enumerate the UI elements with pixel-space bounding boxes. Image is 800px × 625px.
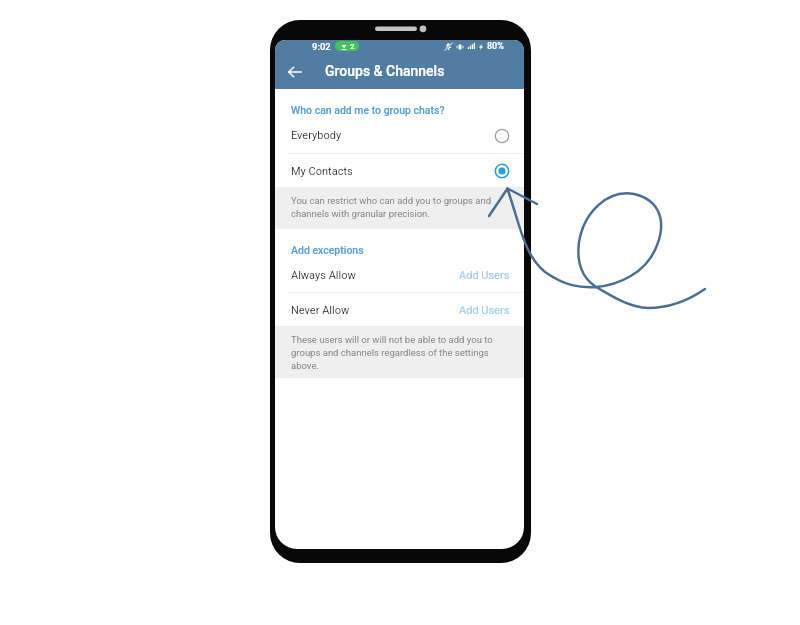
- staticText: Add Users: [459, 304, 510, 317]
- button[interactable]: Always Allow: [275, 258, 524, 292]
- staticText: My Contacts: [291, 165, 353, 178]
- staticText: Add exceptions: [291, 244, 364, 256]
- staticText: You can restrict who can add you to grou…: [291, 195, 504, 220]
- button[interactable]: Everybody: [275, 119, 524, 152]
- staticText: Always Allow: [291, 269, 356, 282]
- staticText: Add Users: [459, 269, 510, 282]
- button[interactable]: Never Allow: [275, 293, 524, 327]
- button[interactable]: My Contacts: [275, 154, 524, 188]
- staticText: 2: [350, 42, 355, 51]
- button[interactable]: Back: [275, 52, 311, 89]
- staticText: These users will or will not be able to …: [291, 334, 504, 372]
- staticText: Groups & Channels: [325, 63, 445, 79]
- button[interactable]: Add Users: [459, 304, 510, 317]
- staticText: 9:02: [312, 41, 331, 52]
- staticText: Who can add me to group chats?: [291, 104, 445, 116]
- staticText: Everybody: [291, 129, 342, 142]
- button[interactable]: Add Users: [459, 269, 510, 282]
- staticText: Never Allow: [291, 304, 350, 317]
- staticText: 80%: [487, 41, 504, 52]
